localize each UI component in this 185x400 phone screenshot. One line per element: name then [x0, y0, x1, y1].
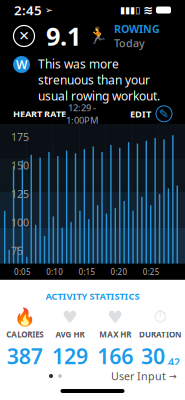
staticText: This was more strenuous than your usual …: [38, 56, 160, 104]
staticText: 125: [11, 187, 29, 201]
staticText: 🔥: [14, 307, 36, 327]
staticText: 175: [11, 130, 29, 144]
staticText: 129: [52, 342, 88, 370]
staticText: ROWING: [114, 22, 160, 36]
staticText: 75: [11, 244, 23, 258]
staticText: User Input: [111, 369, 166, 383]
staticText: 0:15: [78, 266, 95, 277]
staticText: 0:10: [46, 266, 63, 277]
staticText: 166: [97, 342, 133, 370]
button[interactable]: Close: [10, 22, 38, 50]
staticText: EDIT: [130, 108, 151, 120]
staticText: DURATION: [139, 329, 182, 340]
staticText: CALORIES: [6, 329, 43, 340]
staticText: 150: [11, 158, 29, 172]
staticText: HEART RATE: [13, 108, 66, 120]
staticText: W: [16, 56, 27, 72]
staticText: 2:45: [14, 1, 42, 19]
staticText: AVG HR: [55, 329, 84, 340]
staticText: ≋: [143, 3, 153, 17]
button[interactable]: User Input: [111, 369, 185, 383]
staticText: ✎: [159, 107, 169, 121]
staticText: 0:05: [14, 266, 31, 277]
staticText: .42: [165, 355, 180, 369]
staticText: ♥: [107, 307, 123, 327]
staticText: ♥: [62, 307, 78, 327]
staticText: ▮▮▮▯: [120, 5, 140, 15]
staticText: 12:29 - 1:00PM: [66, 101, 99, 126]
staticText: 30: [141, 342, 165, 370]
staticText: 387: [7, 342, 43, 370]
staticText: MAX HR: [99, 329, 131, 340]
staticText: 🏃: [88, 27, 108, 45]
staticText: 9.1: [46, 19, 81, 53]
button[interactable]: EDIT: [130, 106, 172, 122]
staticText: ➢: [45, 5, 53, 15]
staticText: 0:20: [111, 266, 128, 277]
staticText: ✕: [18, 28, 29, 43]
staticText: Today: [114, 36, 145, 50]
staticText: →: [169, 371, 177, 381]
staticText: 100: [11, 215, 29, 229]
staticText: ACTIVITY STATISTICS: [45, 290, 139, 302]
staticText: ⏱: [153, 309, 167, 326]
staticText: 0:25: [143, 266, 160, 277]
